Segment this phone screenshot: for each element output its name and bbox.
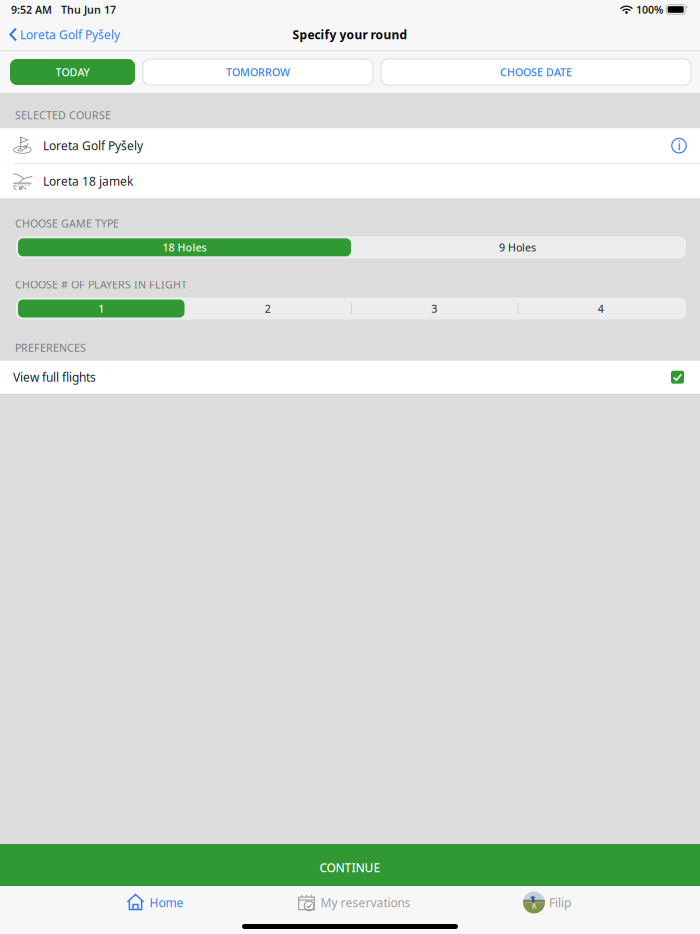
staticText: View full flights [13,369,96,385]
staticText: Loreta 18 jamek [43,173,133,189]
staticText: 3 [431,301,437,316]
staticText: 9 Holes [499,240,536,254]
staticText: PREFERENCES [15,340,86,355]
button[interactable]: View full flights [0,361,700,394]
staticText: My reservations [320,894,410,910]
button[interactable]: My reservations [288,886,420,919]
button[interactable]: Home [89,886,221,919]
staticText: TODAY [55,65,89,79]
staticText: 1 [98,301,104,316]
button[interactable]: CONTINUE [0,844,700,886]
staticText: Loreta Golf Pyšely [20,26,120,42]
button[interactable]: CHOOSE DATE [381,59,691,85]
staticText: 100% [633,2,666,17]
button[interactable]: 9 Holes [351,238,684,256]
button[interactable]: 3 [351,299,517,317]
button[interactable]: TODAY [10,59,135,85]
button[interactable]: 2 [184,299,351,317]
staticText: CHOOSE DATE [500,65,572,79]
staticText: CHOOSE GAME TYPE [15,216,119,230]
staticText: 4 [598,301,604,316]
staticText: Specify your round [292,26,407,42]
staticText: CHOOSE # OF PLAYERS IN FLIGHT [15,277,187,291]
button[interactable]: 4 [517,299,684,317]
staticText: Filip [549,894,571,910]
staticText: TOMORROW [226,65,290,79]
staticText: 18 Holes [162,240,206,254]
staticText: CONTINUE [319,859,380,875]
staticText: i [677,138,680,154]
staticText: SELECTED COURSE [15,108,111,122]
button[interactable]: TOMORROW [143,59,373,85]
button[interactable]: Loreta 18 jamek [0,164,700,198]
staticText: 9:52 AM [11,2,52,17]
button[interactable]: Filip [481,886,613,919]
button[interactable]: Loreta Golf Pyšely [0,128,700,163]
staticText: 2 [265,301,271,316]
button[interactable]: 18 Holes [18,238,351,256]
button[interactable]: Loreta Golf Pyšely [0,21,128,47]
staticText: Home [149,894,183,910]
button[interactable]: 1 [18,299,184,317]
staticText: Loreta Golf Pyšely [43,138,143,154]
staticText: Thu Jun 17 [52,2,116,17]
